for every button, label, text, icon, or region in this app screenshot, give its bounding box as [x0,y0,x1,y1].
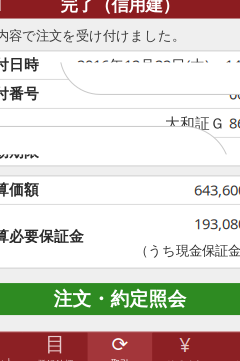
staticText: 注文・約定照会 [53,288,186,310]
button[interactable]: ¥ [152,332,217,361]
staticText: 完了（信用建） [60,0,179,16]
staticText: 大和証Ｇ 8601 [165,113,240,133]
staticText: 2016年12月22日(木) 14:20 [77,55,240,75]
staticText: 0008 [229,84,240,104]
staticText: （うち現金保証金 -） [135,241,240,259]
button[interactable]: 〽 [0,332,23,361]
staticText: 下記内容で注文を受け付けました。 [0,27,185,44]
button[interactable]: i [217,332,240,361]
button[interactable]: 目 [23,332,88,361]
staticText: 有効期限 [0,143,39,161]
staticText: 受付番号 [0,85,39,103]
staticText: 受付日時 [0,56,39,74]
staticText: ¥ [179,331,190,358]
staticText: 登録銘柄 [37,358,73,361]
button[interactable]: ⟳ [88,332,152,361]
staticText: 目 [45,332,65,357]
staticText: マーケット [0,356,15,361]
staticText: 取引 [0,0,3,13]
staticText: お知らせ等 [226,359,240,361]
staticText: ⟳ [111,333,128,356]
staticText: 取引 [111,358,129,361]
staticText: 概算価額 [0,181,39,199]
button[interactable]: ‹ [0,0,10,18]
staticText: 193,080円 [194,214,240,233]
staticText: 643,600円 [194,180,240,200]
button[interactable]: 注文・約定照会 [0,283,240,315]
staticText: 概算必要保証金 [0,227,84,245]
staticText: 株式残高 [167,359,203,361]
